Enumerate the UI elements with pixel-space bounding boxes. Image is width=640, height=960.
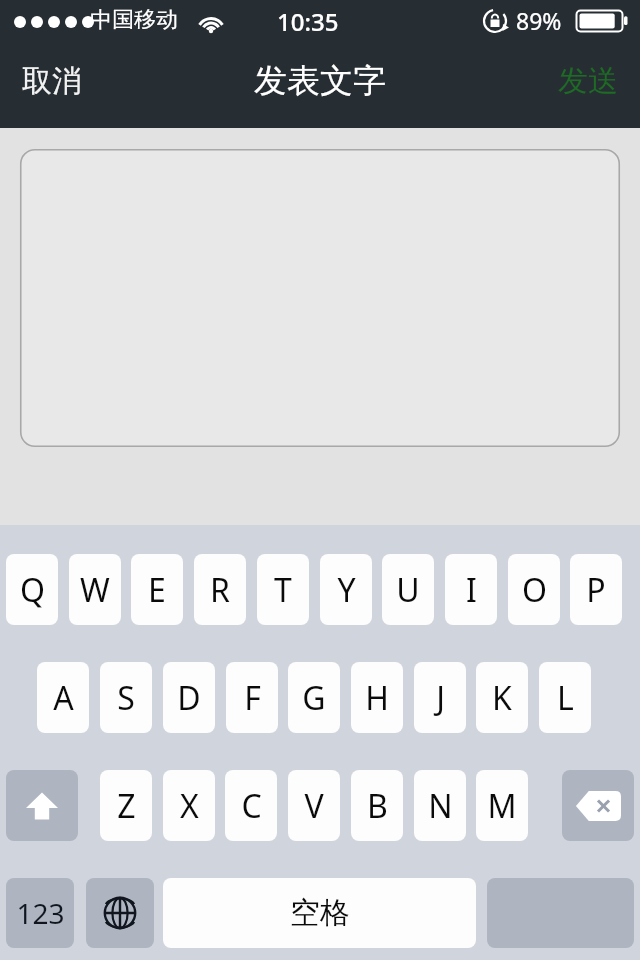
staticText: F — [244, 676, 261, 720]
button[interactable]: K — [476, 662, 528, 733]
staticText: K — [492, 676, 512, 720]
staticText: C — [241, 784, 262, 828]
staticText: L — [557, 676, 574, 720]
button[interactable] — [20, 149, 620, 447]
button[interactable]: H — [351, 662, 403, 733]
button[interactable]: M — [476, 770, 528, 841]
button[interactable]: W — [69, 554, 121, 625]
staticText: N — [428, 784, 453, 828]
button[interactable]: 取消 — [8, 48, 96, 114]
button[interactable]: N — [414, 770, 466, 841]
button[interactable]: O — [508, 554, 560, 625]
staticText: O — [522, 568, 547, 612]
button[interactable]: T — [257, 554, 309, 625]
button[interactable]: L — [539, 662, 591, 733]
button[interactable]: 空格 — [163, 878, 476, 948]
button[interactable]: J — [414, 662, 466, 733]
staticText: 10:35 — [277, 5, 339, 38]
staticText: 中国移动 — [90, 6, 178, 34]
button[interactable]: Y — [320, 554, 372, 625]
button[interactable]: 发送 — [544, 48, 632, 114]
button[interactable]: Shift — [6, 770, 78, 841]
staticText: I — [466, 568, 477, 612]
button[interactable]: A — [37, 662, 89, 733]
button[interactable]: G — [288, 662, 340, 733]
staticText: 发表文字 — [254, 60, 386, 102]
button[interactable]: Z — [100, 770, 152, 841]
staticText: E — [148, 568, 166, 612]
staticText: S — [117, 676, 135, 720]
staticText: 空格 — [290, 894, 350, 932]
staticText: A — [53, 676, 74, 720]
button[interactable]: 123 — [6, 878, 74, 948]
button[interactable]: I — [445, 554, 497, 625]
button[interactable]: Q — [6, 554, 58, 625]
button[interactable]: P — [570, 554, 622, 625]
staticText: 123 — [16, 894, 65, 932]
staticText: M — [487, 784, 517, 828]
button[interactable]: C — [225, 770, 277, 841]
button[interactable]: X — [163, 770, 215, 841]
staticText: D — [177, 676, 201, 720]
staticText: V — [304, 784, 324, 828]
staticText: B — [367, 784, 388, 828]
staticText: Z — [117, 784, 136, 828]
staticText: T — [274, 568, 292, 612]
staticText: 取消 — [22, 62, 82, 100]
button[interactable]: U — [382, 554, 434, 625]
button[interactable]: S — [100, 662, 152, 733]
staticText: W — [80, 568, 110, 612]
button[interactable]: D — [163, 662, 215, 733]
staticText: U — [396, 568, 420, 612]
staticText: H — [365, 676, 389, 720]
staticText: Y — [337, 568, 356, 612]
staticText: J — [436, 676, 445, 720]
staticText: R — [210, 568, 230, 612]
staticText: G — [302, 676, 326, 720]
staticText: X — [180, 784, 199, 828]
button[interactable]: F — [226, 662, 278, 733]
button[interactable]: Switch keyboard — [86, 878, 154, 948]
button[interactable]: V — [288, 770, 340, 841]
button[interactable]: B — [351, 770, 403, 841]
staticText: 89% — [516, 5, 562, 36]
button[interactable]: R — [194, 554, 246, 625]
staticText: 发送 — [558, 62, 618, 100]
button[interactable]: E — [131, 554, 183, 625]
staticText: Q — [20, 568, 45, 612]
button[interactable]: Backspace — [562, 770, 634, 841]
staticText: P — [586, 568, 606, 612]
